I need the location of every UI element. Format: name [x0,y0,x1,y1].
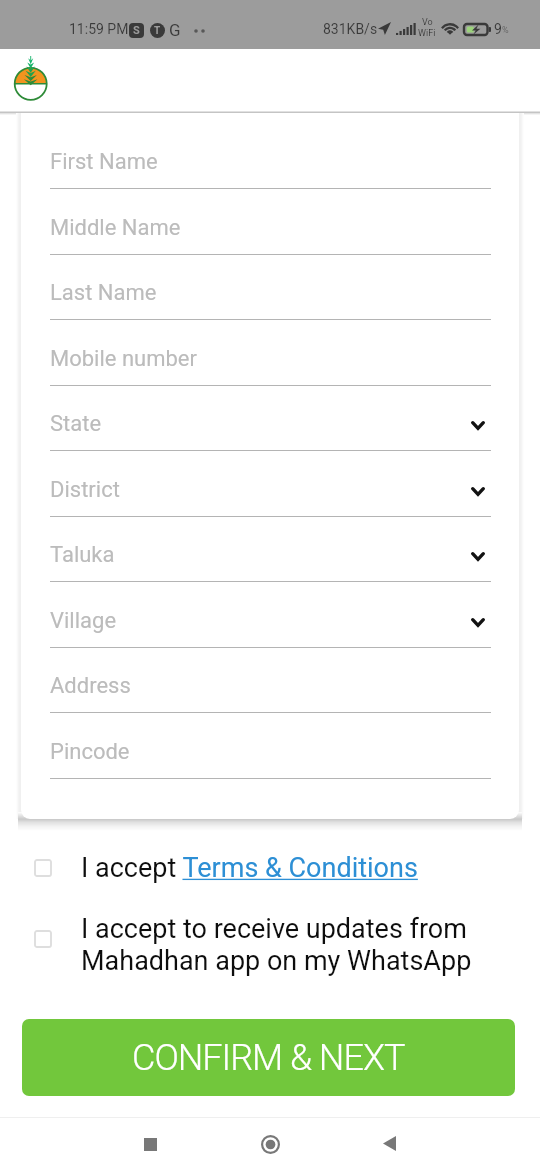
button[interactable]: I accept Terms & Conditions [0,846,540,892]
staticText: CONFIRM & NEXT [132,1037,405,1079]
button[interactable]: Taluka [50,537,491,581]
staticText: Address [50,673,131,699]
staticText: Last Name [50,280,157,306]
button[interactable]: District [50,472,491,516]
staticText: 11:59 PM [69,21,129,37]
staticText: G [169,20,181,40]
staticText: Taluka [50,542,115,568]
staticText: First Name [50,149,158,175]
button[interactable]: Village [50,603,491,647]
button[interactable]: Recent apps [124,1118,176,1170]
button[interactable]: I accept to receive updates from Mahadha… [0,905,540,983]
staticText: 9 [494,21,502,37]
button[interactable]: Back [363,1118,415,1170]
button[interactable]: Last Name [50,275,491,319]
staticText: Pincode [50,739,130,765]
button[interactable]: First Name [50,144,491,188]
staticText: 831KB/s [323,21,378,37]
staticText: District [50,477,120,503]
staticText: Middle Name [50,215,181,241]
button[interactable]: Home [244,1118,296,1170]
button[interactable]: Middle Name [50,210,491,254]
staticText: WiFi [418,28,436,39]
button[interactable]: CONFIRM & NEXT [22,1019,515,1096]
staticText: % [502,25,509,36]
staticText: Village [50,608,117,634]
staticText: Vo [422,17,433,28]
staticText: I accept Terms & Conditions [81,852,418,884]
staticText: State [50,411,102,437]
staticText: Mobile number [50,346,197,372]
staticText: T [154,25,161,37]
button[interactable]: Address [50,668,491,712]
button[interactable]: Mahadhan logo [8,56,54,102]
button[interactable]: Pincode [50,734,491,778]
button[interactable]: State [50,406,491,450]
staticText: S [133,24,140,37]
staticText: I accept to receive updates from Mahadha… [81,913,476,977]
button[interactable]: Mobile number [50,341,491,385]
